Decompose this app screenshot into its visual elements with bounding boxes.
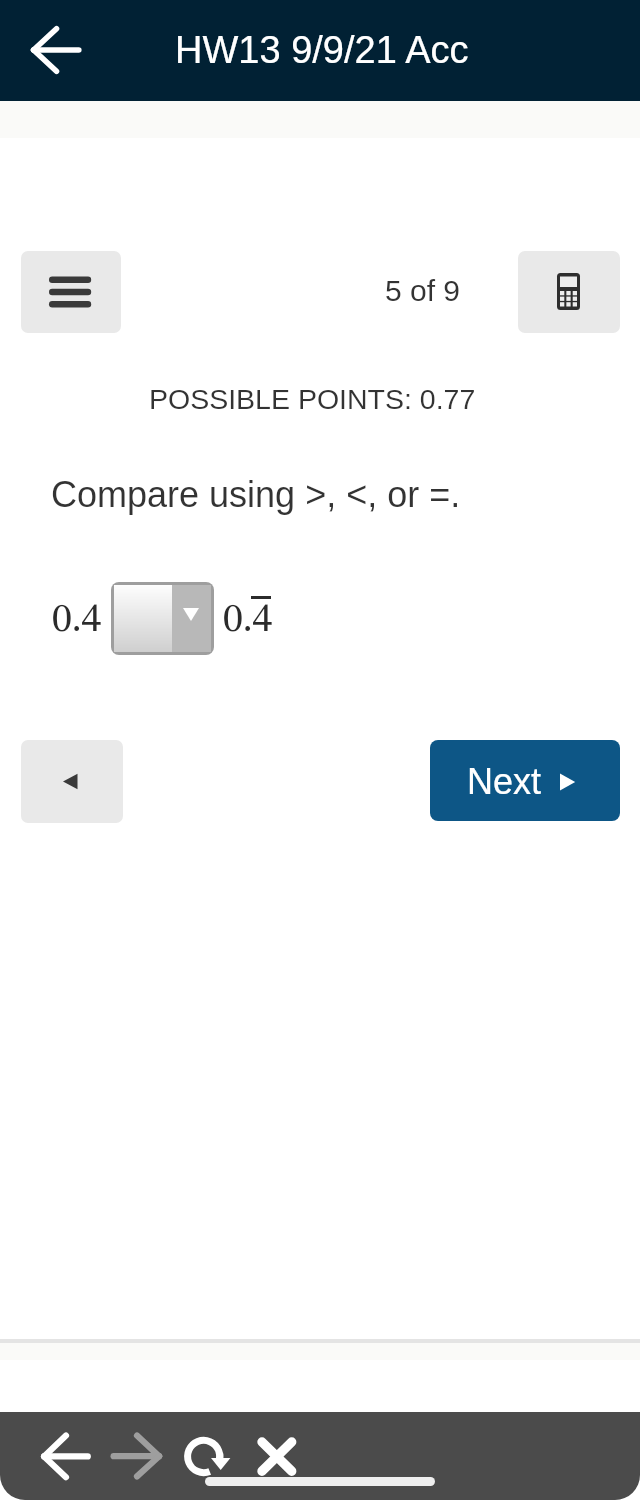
button[interactable]: Next	[430, 740, 620, 821]
button[interactable]: Forward	[104, 1432, 168, 1480]
staticText: 0.4	[52, 601, 102, 641]
button[interactable]: Calculator	[518, 251, 620, 333]
staticText: 5 of 9	[385, 274, 461, 308]
button[interactable]: Reload	[176, 1430, 240, 1484]
button[interactable]: Back	[34, 1432, 98, 1480]
button[interactable]: Select comparison operator	[111, 582, 214, 655]
staticText: Next	[467, 761, 542, 801]
button[interactable]: Menu	[21, 251, 121, 333]
button[interactable]: Stop	[248, 1430, 306, 1484]
staticText: 0.4	[223, 601, 273, 641]
staticText: Compare using >, <, or =.	[51, 474, 461, 514]
staticText: POSSIBLE POINTS: 0.77	[149, 383, 476, 415]
button[interactable]: Previous	[21, 740, 123, 823]
staticText: HW13 9/9/21 Acc	[175, 29, 469, 71]
button[interactable]: Back	[18, 20, 88, 80]
